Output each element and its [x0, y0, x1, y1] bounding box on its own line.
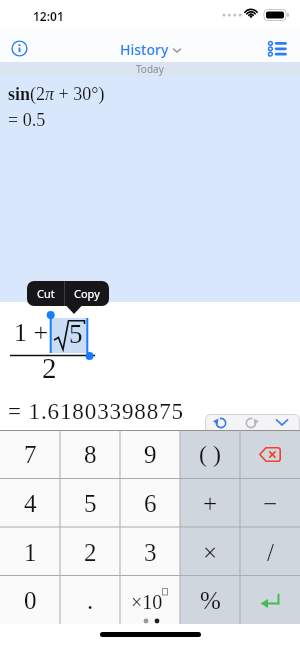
- button[interactable]: ( ): [180, 430, 240, 479]
- button[interactable]: Cut: [27, 281, 64, 306]
- staticText: 1 +: [14, 318, 49, 347]
- staticText: 7: [24, 441, 37, 469]
- staticText: History: [120, 40, 169, 59]
- button[interactable]: 3: [120, 528, 180, 577]
- staticText: 1: [24, 539, 37, 567]
- button[interactable]: ×10: [120, 577, 180, 624]
- button[interactable]: +: [180, 479, 240, 528]
- button[interactable]: 8: [60, 430, 120, 479]
- staticText: = 0.5: [8, 110, 46, 130]
- staticText: Copy: [74, 286, 100, 301]
- staticText: 4: [24, 490, 37, 518]
- staticText: 5: [69, 319, 83, 349]
- staticText: 9: [144, 441, 157, 469]
- button[interactable]: [268, 414, 300, 430]
- button[interactable]: 7: [0, 430, 60, 479]
- staticText: /: [267, 539, 274, 567]
- button[interactable]: [205, 414, 236, 430]
- button[interactable]: [240, 577, 300, 624]
- button[interactable]: [240, 430, 300, 479]
- staticText: +: [203, 490, 218, 518]
- button[interactable]: 4: [0, 479, 60, 528]
- button[interactable]: History: [120, 40, 181, 59]
- button[interactable]: .: [60, 577, 120, 624]
- staticText: Cut: [37, 286, 55, 301]
- staticText: −: [263, 490, 278, 518]
- staticText: 6: [144, 490, 157, 518]
- staticText: = 1.61803398875: [8, 399, 184, 424]
- staticText: %: [200, 587, 221, 615]
- button[interactable]: 6: [120, 479, 180, 528]
- button[interactable]: 0: [0, 577, 60, 624]
- button[interactable]: [11, 40, 28, 57]
- button[interactable]: [236, 414, 268, 430]
- button[interactable]: 2: [60, 528, 120, 577]
- staticText: 0: [24, 587, 37, 615]
- staticText: 3: [144, 539, 157, 567]
- staticText: ×: [203, 539, 218, 567]
- button[interactable]: %: [180, 577, 240, 624]
- button[interactable]: [268, 41, 288, 57]
- staticText: 2: [84, 539, 97, 567]
- staticText: 5: [84, 490, 97, 518]
- staticText: 12:01: [33, 8, 64, 24]
- staticText: ( ): [199, 441, 221, 468]
- button[interactable]: /: [240, 528, 300, 577]
- button[interactable]: ×: [180, 528, 240, 577]
- button[interactable]: Copy: [65, 281, 109, 306]
- button[interactable]: 5: [60, 479, 120, 528]
- staticText: ×10: [131, 591, 163, 613]
- staticText: 2: [42, 352, 57, 384]
- button[interactable]: 1: [0, 528, 60, 577]
- staticText: Today: [136, 62, 164, 76]
- button[interactable]: −: [240, 479, 300, 528]
- button[interactable]: 9: [120, 430, 180, 479]
- staticText: sin(2π + 30°): [8, 84, 105, 104]
- staticText: 8: [84, 441, 97, 469]
- staticText: .: [87, 587, 94, 615]
